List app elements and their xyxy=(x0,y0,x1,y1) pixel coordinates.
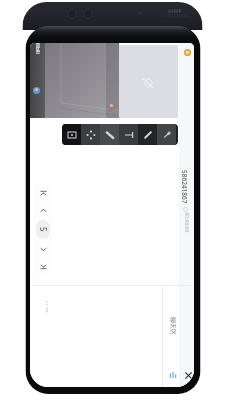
button[interactable]: 说点什么 xyxy=(35,292,48,378)
button[interactable]: step page xyxy=(36,242,50,256)
staticText: bilibili xyxy=(35,43,41,54)
button[interactable]: Level badge xyxy=(184,49,191,56)
button[interactable]: jump page xyxy=(36,259,50,273)
button[interactable]: jump page xyxy=(36,186,50,200)
button[interactable]: tool4 xyxy=(138,124,157,145)
button[interactable]: tool1 xyxy=(81,124,100,145)
staticText: 聊天区 xyxy=(169,317,177,335)
button[interactable]: tool2 xyxy=(100,124,119,145)
button[interactable]: step page xyxy=(36,203,50,217)
staticText: 说点什么 xyxy=(44,300,48,313)
button[interactable]: Close xyxy=(184,371,193,380)
button[interactable]: tool5 xyxy=(157,124,176,145)
button[interactable]: tool3 xyxy=(119,124,138,145)
staticText: 64MP xyxy=(168,8,182,15)
button[interactable]: tool0 xyxy=(62,124,81,145)
staticText: 586241867 xyxy=(180,170,189,204)
button[interactable]: Ranking xyxy=(168,370,178,380)
staticText: 00:00:00 xyxy=(182,212,189,232)
button[interactable]: 5 xyxy=(36,220,50,239)
staticText: 5 xyxy=(38,227,49,232)
staticText: DUAL CAMERA xyxy=(164,13,189,18)
